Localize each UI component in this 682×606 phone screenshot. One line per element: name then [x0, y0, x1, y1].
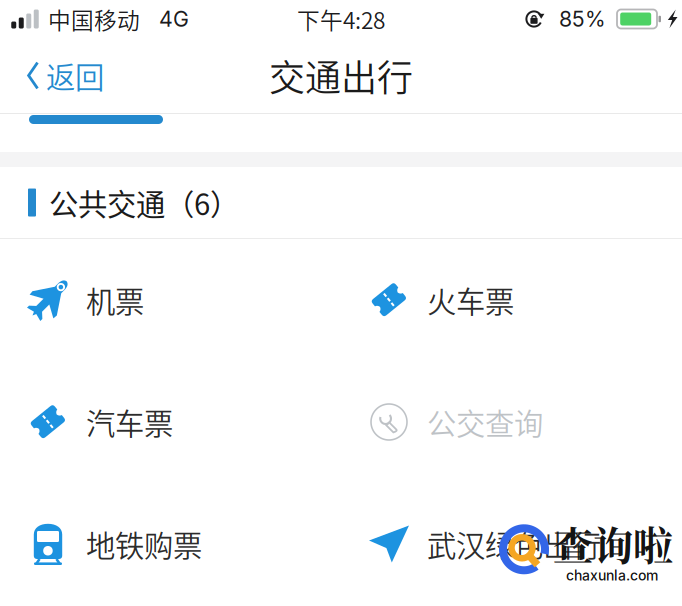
staticText: 返回 — [46, 54, 104, 97]
staticText: 地铁购票 — [86, 523, 202, 565]
staticText: 公交查询 — [427, 401, 543, 443]
staticText: 火车票 — [427, 279, 514, 321]
button[interactable]: 返回 — [0, 38, 120, 113]
staticText: 中国移动 — [48, 3, 140, 35]
staticText: 公共交通（6） — [49, 181, 239, 224]
staticText: 85% — [559, 6, 606, 32]
staticText: 查询啦 — [553, 515, 673, 572]
button[interactable]: 武汉绿色出行 — [341, 483, 682, 605]
button[interactable]: 地铁购票 — [0, 483, 341, 605]
staticText: 机票 — [86, 279, 144, 321]
button[interactable]: 公交查询 — [341, 361, 682, 483]
staticText: 武汉绿色出行 — [427, 523, 601, 565]
staticText: 汽车票 — [86, 401, 173, 443]
staticText: 交通出行 — [269, 49, 413, 101]
button[interactable]: 汽车票 — [0, 361, 341, 483]
staticText: 下午4:28 — [297, 3, 385, 35]
button[interactable]: 火车票 — [341, 239, 682, 361]
staticText: chaxunla.com — [566, 567, 658, 584]
button[interactable]: 机票 — [0, 239, 341, 361]
staticText: 4G — [159, 6, 189, 32]
